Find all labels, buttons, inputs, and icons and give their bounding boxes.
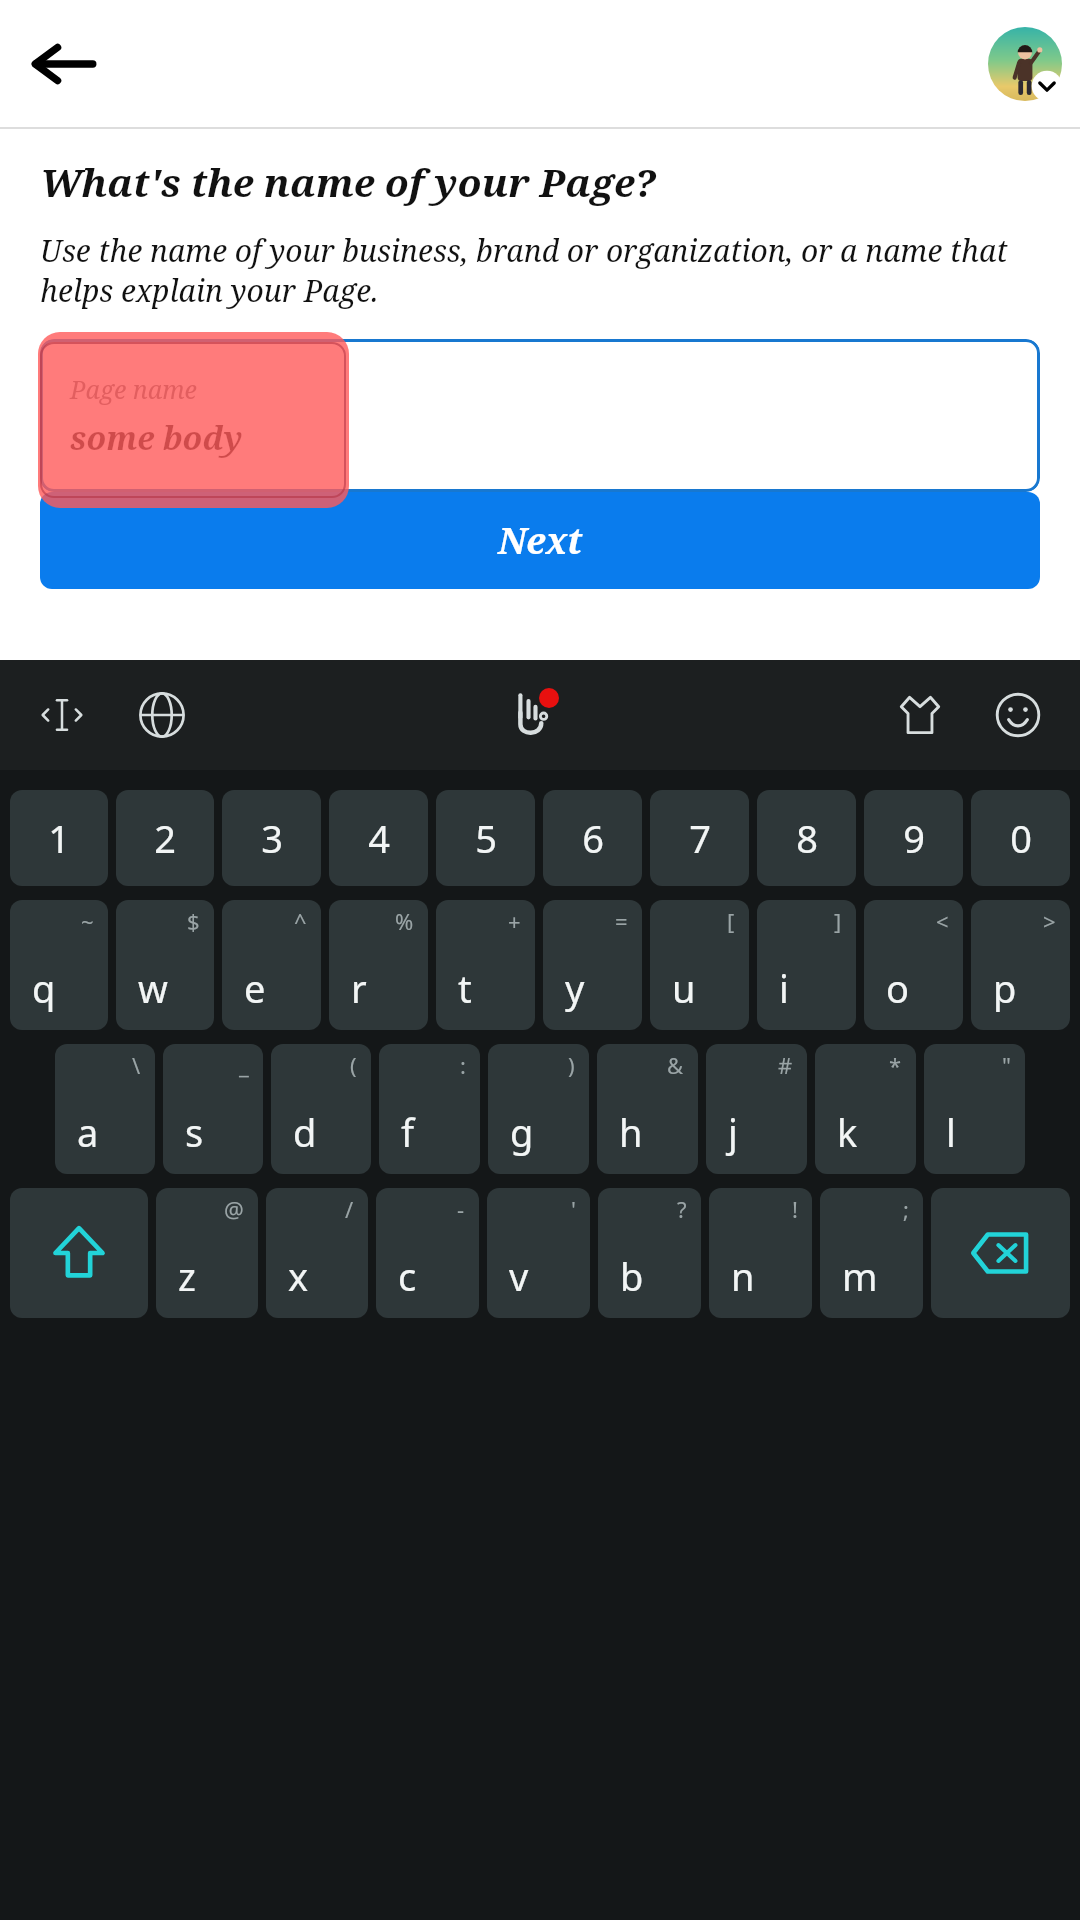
- button[interactable]: \: [55, 1044, 155, 1174]
- staticText: e: [244, 962, 266, 1014]
- button[interactable]: &: [597, 1044, 698, 1174]
- button[interactable]: %: [329, 900, 428, 1030]
- button[interactable]: ?: [598, 1188, 701, 1318]
- button[interactable]: ;: [820, 1188, 923, 1318]
- staticText: b: [620, 1250, 644, 1302]
- button[interactable]: Language: [130, 683, 194, 747]
- button[interactable]: 2: [116, 790, 214, 886]
- button[interactable]: 3: [222, 790, 321, 886]
- button[interactable]: _: [163, 1044, 263, 1174]
- staticText: some body: [70, 416, 243, 460]
- button[interactable]: ~: [10, 900, 108, 1030]
- staticText: a: [77, 1106, 99, 1158]
- staticText: ~: [81, 906, 94, 936]
- button[interactable]: 6: [543, 790, 642, 886]
- button[interactable]: Next: [40, 492, 1040, 589]
- button[interactable]: =: [543, 900, 642, 1030]
- staticText: ": [1002, 1050, 1011, 1080]
- staticText: p: [993, 962, 1017, 1014]
- button[interactable]: Handwriting: [500, 683, 564, 747]
- button[interactable]: Backspace: [931, 1188, 1070, 1318]
- staticText: q: [32, 962, 56, 1014]
- staticText: -: [457, 1194, 465, 1224]
- button[interactable]: $: [116, 900, 214, 1030]
- button[interactable]: 5: [436, 790, 535, 886]
- staticText: f: [401, 1106, 415, 1158]
- staticText: 0: [1010, 812, 1032, 864]
- staticText: w: [138, 962, 168, 1014]
- staticText: What's the name of your Page?: [40, 155, 656, 208]
- staticText: r: [351, 962, 367, 1014]
- staticText: Page name: [70, 372, 197, 406]
- staticText: z: [178, 1250, 196, 1302]
- button[interactable]: (: [271, 1044, 371, 1174]
- button[interactable]: +: [436, 900, 535, 1030]
- staticText: =: [615, 906, 628, 936]
- staticText: x: [288, 1250, 309, 1302]
- button[interactable]: -: [376, 1188, 479, 1318]
- button[interactable]: @: [156, 1188, 258, 1318]
- button[interactable]: 8: [757, 790, 856, 886]
- staticText: /: [345, 1194, 354, 1224]
- button[interactable]: 1: [10, 790, 108, 886]
- staticText: ]: [834, 906, 842, 936]
- button[interactable]: ^: [222, 900, 321, 1030]
- button[interactable]: /: [266, 1188, 368, 1318]
- button[interactable]: ]: [757, 900, 856, 1030]
- staticText: [: [727, 906, 735, 936]
- staticText: !: [792, 1194, 798, 1224]
- staticText: &: [667, 1050, 684, 1080]
- staticText: y: [565, 962, 585, 1014]
- staticText: \: [132, 1050, 141, 1080]
- button[interactable]: <: [864, 900, 963, 1030]
- staticText: %: [395, 906, 414, 936]
- button[interactable]: Themes: [888, 683, 952, 747]
- staticText: n: [731, 1250, 755, 1302]
- staticText: u: [672, 962, 696, 1014]
- staticText: i: [779, 962, 789, 1014]
- staticText: k: [837, 1106, 858, 1158]
- staticText: 9: [903, 812, 925, 864]
- button[interactable]: #: [706, 1044, 807, 1174]
- button[interactable]: [: [650, 900, 749, 1030]
- staticText: >: [1043, 906, 1056, 936]
- staticText: m: [842, 1250, 878, 1302]
- button[interactable]: >: [971, 900, 1070, 1030]
- button[interactable]: !: [709, 1188, 812, 1318]
- button[interactable]: *: [815, 1044, 916, 1174]
- staticText: ^: [294, 906, 307, 936]
- staticText: t: [458, 962, 472, 1014]
- button[interactable]: 7: [650, 790, 749, 886]
- staticText: 8: [796, 812, 818, 864]
- staticText: #: [778, 1050, 793, 1080]
- staticText: 5: [475, 812, 497, 864]
- staticText: ': [571, 1194, 576, 1224]
- staticText: j: [728, 1106, 738, 1158]
- button[interactable]: 9: [864, 790, 963, 886]
- staticText: 4: [368, 812, 390, 864]
- staticText: o: [886, 962, 909, 1014]
- staticText: _: [239, 1050, 249, 1080]
- button[interactable]: Back: [20, 20, 108, 108]
- button[interactable]: Move cursor: [30, 683, 94, 747]
- staticText: d: [293, 1106, 317, 1158]
- staticText: Use the name of your business, brand or …: [40, 230, 1032, 311]
- button[interactable]: Shift: [10, 1188, 148, 1318]
- button[interactable]: 0: [971, 790, 1070, 886]
- staticText: 2: [154, 812, 176, 864]
- button[interactable]: Page name: [40, 339, 1040, 492]
- button[interactable]: Emoji: [986, 683, 1050, 747]
- staticText: ?: [677, 1194, 687, 1224]
- button[interactable]: Profile: [988, 27, 1062, 101]
- staticText: $: [187, 906, 200, 936]
- button[interactable]: ": [924, 1044, 1025, 1174]
- button[interactable]: :: [379, 1044, 480, 1174]
- staticText: +: [508, 906, 521, 936]
- button[interactable]: ': [487, 1188, 590, 1318]
- button[interactable]: 4: [329, 790, 428, 886]
- staticText: :: [460, 1050, 466, 1080]
- staticText: Next: [498, 516, 583, 565]
- staticText: *: [889, 1050, 902, 1080]
- button[interactable]: ): [488, 1044, 589, 1174]
- staticText: ;: [903, 1194, 909, 1224]
